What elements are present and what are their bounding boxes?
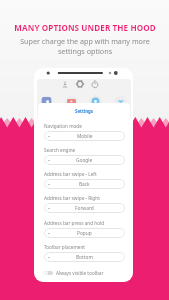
staticText: Popup (77, 230, 92, 237)
staticText: MANY OPTIONS UNDER THE HOOD (14, 22, 156, 33)
staticText: Settings (75, 108, 93, 114)
button[interactable]: Popup (44, 228, 125, 238)
button[interactable]: Mobile (44, 131, 125, 141)
button[interactable]: Forward (44, 203, 125, 213)
button[interactable]: App shortcut (114, 95, 127, 108)
staticText: Search engine (44, 147, 76, 153)
staticText: Super charge the app with many more sett… (15, 36, 155, 56)
button[interactable]: Always visible toolbar (44, 269, 104, 277)
staticText: Address bar swipe - Left (44, 171, 97, 177)
button[interactable]: App shortcut (40, 95, 53, 108)
button[interactable]: Power (90, 79, 100, 89)
staticText: Google (76, 157, 93, 164)
button[interactable]: Bottom (44, 252, 125, 262)
button[interactable]: App shortcut (65, 95, 78, 108)
staticText: Back (79, 181, 90, 188)
button[interactable]: Download (60, 79, 70, 89)
staticText: Toolbar placement (44, 244, 86, 250)
staticText: Always visible toolbar (56, 270, 104, 276)
staticText: Navigation mode (44, 123, 82, 129)
button[interactable]: Google (44, 155, 125, 165)
staticText: Bottom (76, 254, 93, 261)
staticText: Forward (75, 205, 94, 212)
button[interactable]: Back (44, 179, 125, 189)
button[interactable]: App shortcut (89, 95, 102, 108)
staticText: Address bar press and hold (44, 220, 105, 226)
staticText: Mobile (77, 133, 93, 140)
staticText: Address bar swipe - Right (44, 195, 100, 201)
button[interactable]: Settings (75, 79, 85, 89)
